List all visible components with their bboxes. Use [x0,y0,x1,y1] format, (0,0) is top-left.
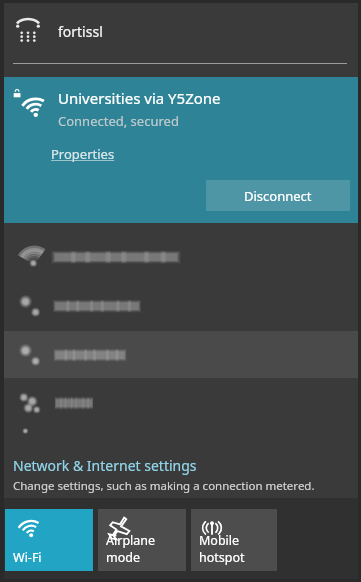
button[interactable]: Wi-Fi network [0,331,361,378]
button[interactable] [0,428,361,438]
button[interactable]: fortissl [0,0,361,77]
button[interactable]: Mobile hotspot [191,509,277,571]
staticText: Change settings, such as making a connec… [13,478,315,494]
staticText: hotspot [199,549,245,566]
button[interactable]: Airplane mode [98,509,186,571]
staticText: Universities via Y5Zone [58,88,221,108]
button[interactable]: Disconnect [206,180,350,211]
button[interactable]: Universities via Y5Zone [0,77,361,223]
button[interactable]: Properties [50,143,116,165]
staticText: Disconnect [244,187,312,205]
staticText: Mobile [199,532,240,549]
staticText: Airplane mode [106,532,186,566]
staticText: Network & Internet settings [13,456,197,475]
staticText: fortissl [58,22,103,41]
button[interactable]: Wi-Fi [5,509,93,571]
button[interactable]: Network & Internet settings [0,438,361,498]
staticText: Properties [51,145,115,163]
staticText: Connected, secured [58,112,179,130]
button[interactable]: Wi-Fi network [0,378,361,428]
button[interactable]: Wi-Fi network [0,281,361,331]
staticText: Wi-Fi [13,549,42,566]
button[interactable]: Wi-Fi network [0,223,361,281]
